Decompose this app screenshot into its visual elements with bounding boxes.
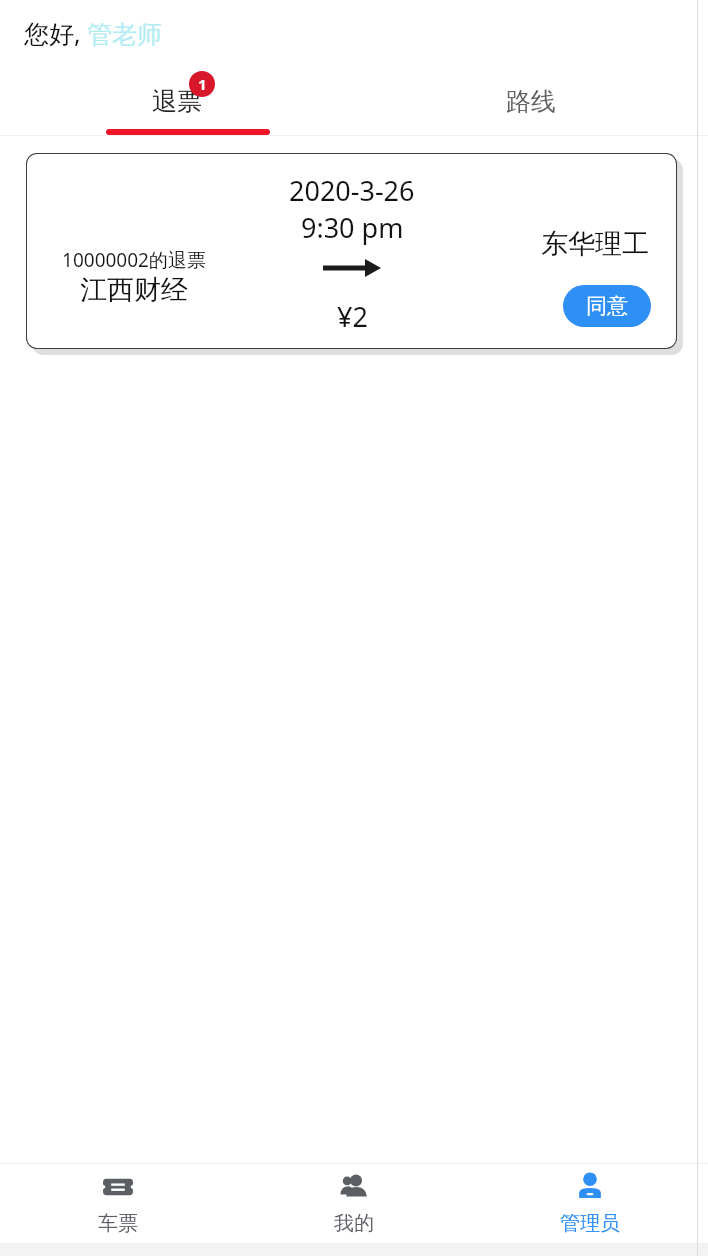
staticText: 东华理工 xyxy=(541,227,649,261)
staticText: 2020-3-26 xyxy=(289,172,415,209)
staticText: 车票 xyxy=(98,1211,138,1236)
staticText: 退票 xyxy=(152,86,202,117)
staticText: 路线 xyxy=(506,86,556,117)
staticText: 同意 xyxy=(586,293,628,319)
staticText: 江西财经 xyxy=(80,273,188,307)
staticText: 管理员 xyxy=(560,1211,620,1236)
button[interactable]: 路线 xyxy=(354,66,708,136)
button[interactable]: 管理员 xyxy=(472,1163,708,1243)
other: 车票 xyxy=(101,1170,135,1204)
button[interactable]: 同意 xyxy=(563,285,651,327)
other: 管理员 xyxy=(573,1170,607,1204)
other: 我的 xyxy=(337,1170,371,1204)
staticText: 我的 xyxy=(334,1211,374,1236)
staticText: ¥2 xyxy=(337,298,368,335)
button[interactable]: 我的 xyxy=(236,1163,472,1243)
staticText: 9:30 pm xyxy=(301,209,404,246)
button[interactable]: 10000002的退票 xyxy=(26,153,677,349)
staticText: 您好, 管老师 xyxy=(24,16,163,50)
staticText: 10000002的退票 xyxy=(62,247,206,273)
button[interactable]: 退票 xyxy=(0,66,354,136)
button[interactable]: 车票 xyxy=(0,1163,236,1243)
staticText: 1 xyxy=(198,74,207,94)
